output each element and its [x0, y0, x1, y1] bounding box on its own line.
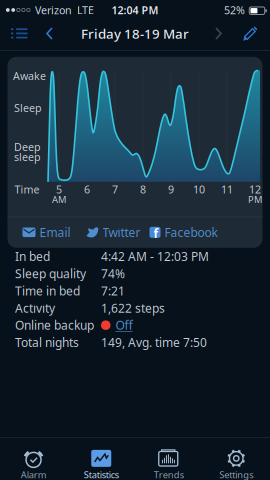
- staticText: 11: [221, 182, 233, 196]
- button[interactable]: Email: [22, 224, 70, 240]
- button[interactable]: Settings: [202, 438, 270, 480]
- staticText: Email: [39, 224, 70, 240]
- staticText: Time in bed: [15, 283, 80, 299]
- staticText: 1,622 steps: [101, 300, 165, 316]
- button[interactable]: Statistics: [67, 438, 135, 480]
- staticText: Trends: [154, 468, 184, 480]
- staticText: Friday 18-19 Mar: [81, 25, 189, 42]
- staticText: 5: [56, 182, 62, 196]
- button[interactable]: [215, 18, 222, 48]
- button[interactable]: [28, 18, 53, 48]
- staticText: Facebook: [164, 224, 217, 240]
- staticText: Statistics: [84, 468, 119, 480]
- staticText: Total nights: [15, 334, 79, 350]
- staticText: Deep: [14, 140, 41, 154]
- staticText: 7:21: [101, 283, 125, 299]
- staticText: 9: [168, 182, 174, 196]
- staticText: 74%: [101, 266, 125, 281]
- staticText: 7: [112, 182, 118, 196]
- staticText: 6: [84, 182, 90, 196]
- staticText: AM: [52, 193, 66, 205]
- staticText: Alarm: [21, 468, 47, 480]
- staticText: 10: [193, 182, 205, 196]
- staticText: Off: [115, 317, 132, 333]
- staticText: Online backup: [15, 317, 94, 333]
- button[interactable]: f: [149, 224, 217, 240]
- staticText: sleep: [14, 150, 41, 164]
- staticText: 52%: [224, 3, 245, 17]
- staticText: 12:04 PM: [111, 3, 158, 17]
- staticText: PM: [248, 193, 262, 205]
- staticText: Sleep quality: [15, 266, 86, 281]
- button[interactable]: Off: [101, 317, 132, 333]
- staticText: Time: [14, 182, 39, 196]
- button[interactable]: Trends: [135, 438, 202, 480]
- staticText: Settings: [219, 468, 253, 480]
- staticText: 8: [140, 182, 146, 196]
- staticText: 149, Avg. time 7:50: [101, 334, 207, 350]
- button[interactable]: Twitter: [85, 224, 140, 240]
- staticText: Sleep: [14, 101, 42, 115]
- staticText: f: [153, 225, 158, 241]
- staticText: 4:42 AM - 12:03 PM: [101, 248, 209, 264]
- button[interactable]: Alarm: [0, 438, 67, 480]
- staticText: Awake: [13, 69, 46, 83]
- staticText: Activity: [15, 300, 55, 316]
- staticText: Twitter: [102, 224, 140, 240]
- staticText: 12: [249, 182, 261, 196]
- staticText: LTE: [77, 3, 94, 17]
- staticText: In bed: [15, 248, 50, 264]
- button[interactable]: [0, 19, 28, 48]
- button[interactable]: [222, 19, 270, 48]
- staticText: Verizon: [35, 3, 72, 17]
